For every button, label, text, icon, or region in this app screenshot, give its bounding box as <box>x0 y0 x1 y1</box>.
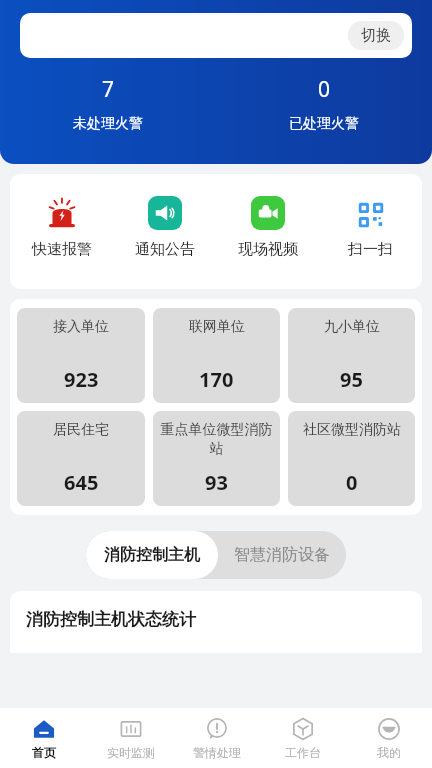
staticText: 警情处理 <box>193 745 241 760</box>
button[interactable]: 工作台 <box>260 708 346 768</box>
button[interactable]: 居民住宅 <box>17 411 145 506</box>
button[interactable]: 社区微型消防站 <box>288 411 415 506</box>
staticText: 消防控制主机状态统计 <box>26 609 196 630</box>
staticText: 工作台 <box>285 745 321 760</box>
other: 工作台 <box>291 717 315 741</box>
staticText: 0 <box>318 75 331 104</box>
staticText: 我的 <box>377 745 401 760</box>
button[interactable]: 联网单位 <box>153 308 280 403</box>
other: 警情处理 <box>205 717 229 741</box>
staticText: 93 <box>205 469 228 496</box>
staticText: 现场视频 <box>238 240 298 259</box>
button[interactable]: 快速报警 <box>10 196 113 259</box>
button[interactable]: 7 <box>0 75 216 133</box>
button[interactable]: 现场视频 <box>216 196 319 259</box>
other: 现场视频 <box>257 202 279 224</box>
button[interactable]: 切换 <box>20 13 412 58</box>
other: 我的 <box>377 717 401 741</box>
button[interactable]: 警情处理 <box>174 708 260 768</box>
other: 通知公告 <box>154 202 176 224</box>
button[interactable]: 扫一扫 <box>319 196 422 259</box>
staticText: 切换 <box>361 26 391 45</box>
staticText: 社区微型消防站 <box>303 421 401 439</box>
button[interactable]: 我的 <box>346 708 432 768</box>
staticText: 扫一扫 <box>348 240 393 259</box>
button[interactable]: 实时监测 <box>87 708 174 768</box>
button[interactable]: 消防控制主机 <box>86 531 218 579</box>
staticText: 923 <box>64 366 99 393</box>
other: 首页 <box>32 717 56 741</box>
button[interactable]: 首页 <box>0 708 87 768</box>
staticText: 九小单位 <box>324 318 380 336</box>
staticText: 首页 <box>32 745 56 760</box>
staticText: 快速报警 <box>32 240 92 259</box>
staticText: 接入单位 <box>53 318 109 336</box>
staticText: 95 <box>340 366 363 393</box>
staticText: 实时监测 <box>107 745 155 760</box>
button[interactable]: 智慧消防设备 <box>218 531 346 579</box>
button[interactable]: 九小单位 <box>288 308 415 403</box>
staticText: 智慧消防设备 <box>234 545 330 565</box>
staticText: 重点单位微型消防站 <box>157 421 276 457</box>
staticText: 645 <box>64 469 99 496</box>
button[interactable]: 切换 <box>348 21 404 50</box>
staticText: 居民住宅 <box>53 421 109 439</box>
staticText: 消防控制主机 <box>104 545 200 565</box>
button[interactable]: 通知公告 <box>113 196 216 259</box>
staticText: 7 <box>102 75 115 104</box>
staticText: 未处理火警 <box>73 115 143 133</box>
other: 快速报警 <box>45 196 79 230</box>
button[interactable]: 重点单位微型消防站 <box>153 411 280 506</box>
staticText: 联网单位 <box>189 318 245 336</box>
staticText: 170 <box>199 366 234 393</box>
staticText: 已处理火警 <box>289 115 359 133</box>
button[interactable]: 0 <box>216 75 432 133</box>
other: 扫一扫 <box>354 196 388 230</box>
button[interactable]: 接入单位 <box>17 308 145 403</box>
staticText: 0 <box>346 469 358 496</box>
staticText: 通知公告 <box>135 240 195 259</box>
other: 实时监测 <box>119 717 143 741</box>
